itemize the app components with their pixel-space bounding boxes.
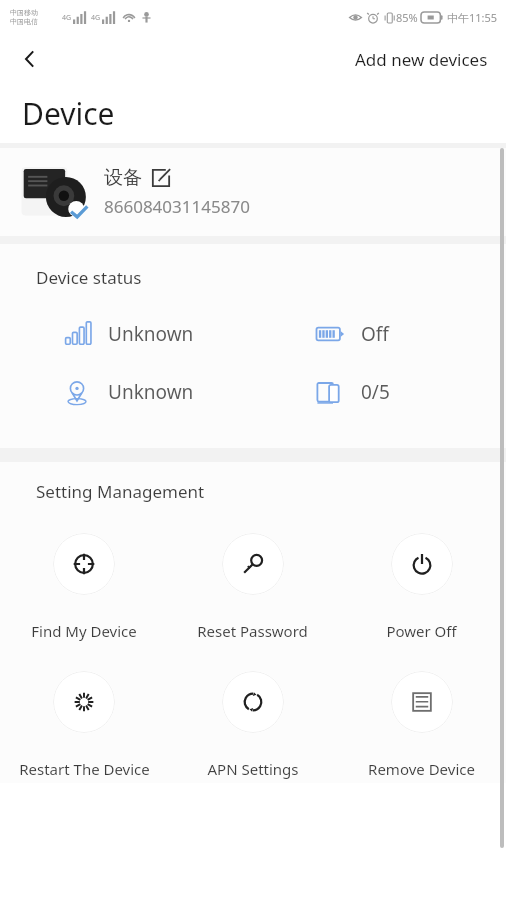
staticText: Find My Device — [31, 621, 137, 641]
button[interactable]: Add new devices — [351, 42, 492, 77]
button[interactable]: Power Off — [337, 529, 506, 645]
staticText: Add new devices — [355, 48, 488, 71]
staticText: 设备 — [104, 166, 142, 190]
button[interactable]: 设备 — [0, 148, 506, 236]
staticText: Power Off — [386, 621, 457, 641]
button[interactable]: APN Settings — [168, 667, 337, 783]
staticText: Unknown — [108, 321, 194, 347]
staticText: 866084031145870 — [104, 195, 250, 218]
button[interactable]: Find My Device — [0, 529, 168, 645]
staticText: 85% — [396, 10, 418, 25]
staticText: 中国电信 — [10, 17, 38, 26]
staticText: Device status — [36, 266, 142, 289]
button[interactable]: Unknown — [0, 377, 253, 407]
button[interactable]: Edit name — [149, 166, 173, 190]
staticText: 中午11:55 — [447, 10, 498, 25]
staticText: Reset Password — [197, 621, 308, 641]
button[interactable]: Off — [253, 319, 506, 349]
staticText: Setting Management — [36, 480, 205, 503]
staticText: 中国移动 — [10, 8, 38, 17]
button[interactable]: Unknown — [0, 319, 253, 349]
staticText: Restart The Device — [19, 759, 150, 779]
staticText: Off — [361, 321, 389, 347]
staticText: 0/5 — [361, 379, 390, 405]
staticText: Remove Device — [368, 759, 475, 779]
button[interactable]: 0/5 — [253, 377, 506, 407]
button[interactable]: Remove Device — [337, 667, 506, 783]
staticText: APN Settings — [207, 759, 299, 779]
button[interactable]: Restart The Device — [0, 667, 168, 783]
button[interactable]: Back — [8, 37, 52, 81]
button[interactable]: Reset Password — [168, 529, 337, 645]
staticText: Unknown — [108, 379, 194, 405]
staticText: 4G — [91, 13, 101, 23]
staticText: Device — [22, 93, 115, 134]
staticText: 4G — [62, 13, 72, 23]
